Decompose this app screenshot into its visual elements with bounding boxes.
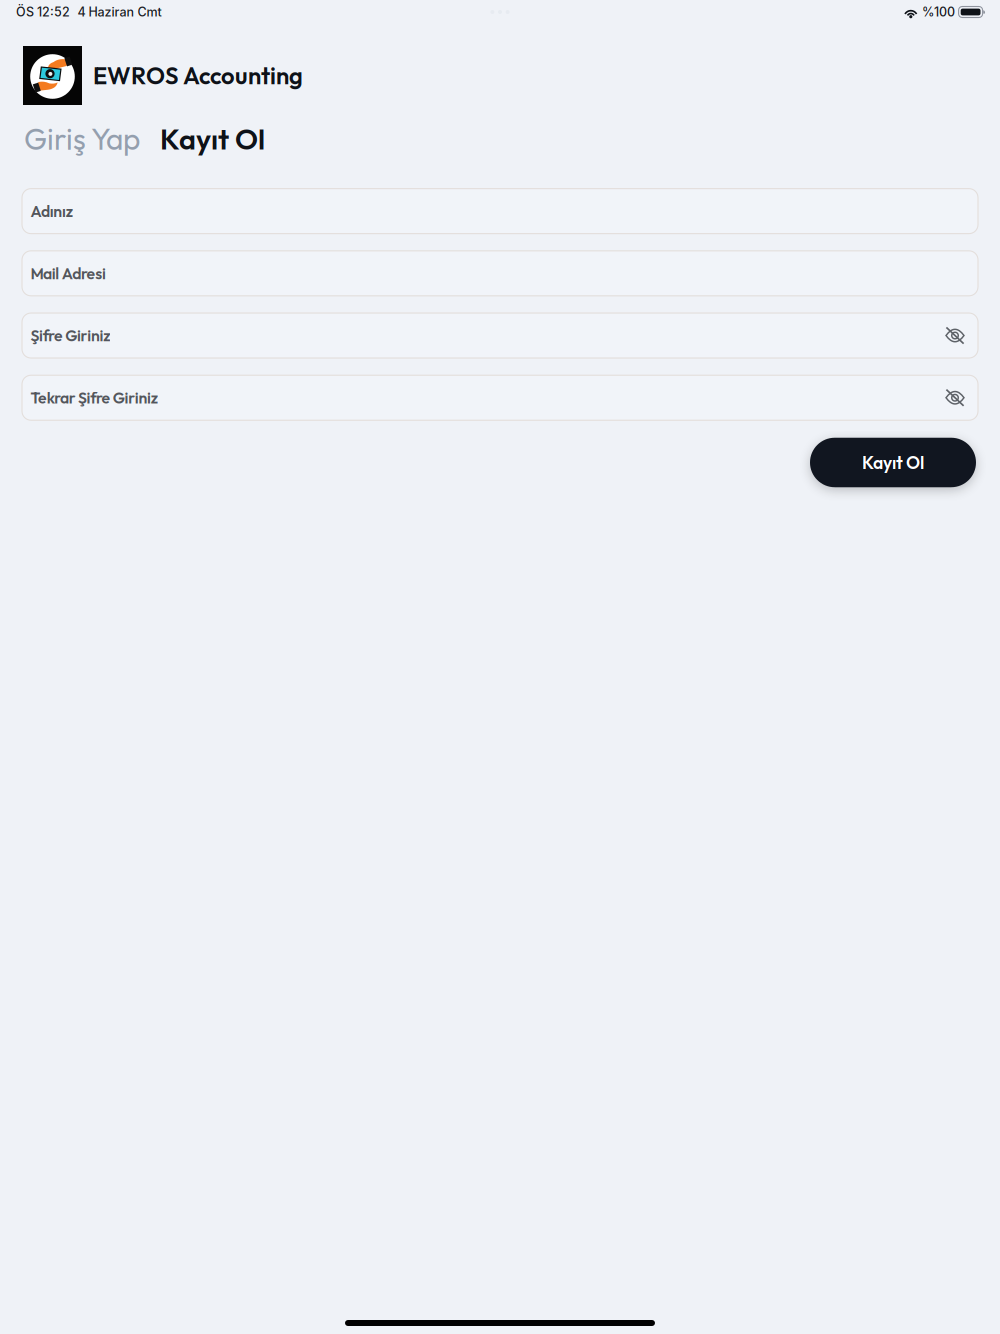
button[interactable]: Tekrar Şifre Giriniz — [22, 375, 978, 420]
button[interactable]: Şifreyi göster — [945, 326, 965, 344]
button[interactable]: Mail Adresi — [22, 251, 978, 296]
button[interactable]: Şifre Giriniz — [22, 313, 978, 358]
staticText: Giriş Yap — [24, 120, 140, 158]
button[interactable]: Şifreyi göster — [945, 389, 965, 407]
staticText: Tekrar Şifre Giriniz — [30, 388, 158, 408]
button[interactable]: Giriş Yap — [24, 120, 140, 158]
staticText: 4 Haziran Cmt — [77, 4, 161, 20]
staticText: Kayıt Ol — [160, 121, 265, 157]
staticText: Adınız — [30, 201, 73, 221]
staticText: ÖS 12:52 — [16, 4, 70, 20]
staticText: Şifre Giriniz — [30, 326, 110, 345]
button[interactable]: Kayıt Ol — [160, 121, 265, 157]
staticText: Mail Adresi — [30, 263, 106, 283]
staticText: %100 — [922, 4, 955, 20]
staticText: Kayıt Ol — [862, 451, 924, 474]
staticText: EWROS Accounting — [93, 60, 303, 90]
button[interactable]: Adınız — [22, 189, 978, 234]
button[interactable]: Kayıt Ol — [810, 438, 976, 487]
